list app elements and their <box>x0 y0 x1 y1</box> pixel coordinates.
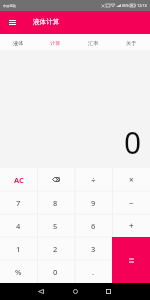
button[interactable]: 汇率 <box>74 34 112 50</box>
staticText: . <box>92 267 95 277</box>
button[interactable]: 1 <box>0 237 37 260</box>
staticText: ÷ <box>91 174 96 185</box>
staticText: 2 <box>53 244 58 254</box>
button[interactable]: 6 <box>74 214 112 237</box>
button[interactable]: 9 <box>74 191 112 214</box>
button[interactable]: Home <box>63 283 87 300</box>
staticText: AC <box>14 175 24 185</box>
button[interactable]: + <box>112 214 150 237</box>
button[interactable]: 0 <box>37 260 74 283</box>
button[interactable]: Recents <box>96 283 120 300</box>
staticText: 7 <box>16 198 21 208</box>
staticText: − <box>129 197 134 208</box>
staticText: 85% <box>122 3 129 8</box>
button[interactable]: Back <box>29 283 53 300</box>
button[interactable]: × <box>112 168 150 191</box>
staticText: 4 <box>16 221 21 231</box>
staticText: 关于 <box>126 40 137 47</box>
staticText: 液体计算 <box>33 18 60 26</box>
other: Backspace <box>52 177 60 182</box>
staticText: % <box>15 267 22 277</box>
staticText: 液体 <box>13 40 24 47</box>
staticText: 1 <box>16 244 21 254</box>
button[interactable]: 3 <box>74 237 112 260</box>
button[interactable]: ÷ <box>74 168 112 191</box>
button[interactable]: Backspace <box>37 168 74 191</box>
button[interactable]: 4 <box>0 214 37 237</box>
staticText: 5 <box>53 221 58 231</box>
button[interactable]: . <box>74 260 112 283</box>
staticText: 3 <box>91 244 96 254</box>
button[interactable]: 计算 <box>37 34 74 50</box>
staticText: 0 <box>124 122 142 163</box>
staticText: 9 <box>91 198 96 208</box>
staticText: 12:13 <box>137 3 147 8</box>
staticText: 6 <box>91 221 96 231</box>
button[interactable]: 液体 <box>0 34 37 50</box>
staticText: 汇率 <box>88 40 99 47</box>
staticText: 8 <box>53 198 58 208</box>
button[interactable]: − <box>112 191 150 214</box>
button[interactable]: 5 <box>37 214 74 237</box>
staticText: 中国移动 <box>3 4 16 8</box>
button[interactable]: 2 <box>37 237 74 260</box>
button[interactable] <box>112 237 150 283</box>
button[interactable]: Menu <box>5 15 19 29</box>
button[interactable]: 7 <box>0 191 37 214</box>
button[interactable]: 关于 <box>112 34 150 50</box>
button[interactable]: % <box>0 260 37 283</box>
staticText: + <box>129 220 134 231</box>
staticText: 0 <box>53 267 58 277</box>
staticText: × <box>129 174 134 185</box>
staticText: 计算 <box>50 40 61 47</box>
button[interactable]: 8 <box>37 191 74 214</box>
button[interactable]: AC <box>0 168 37 191</box>
